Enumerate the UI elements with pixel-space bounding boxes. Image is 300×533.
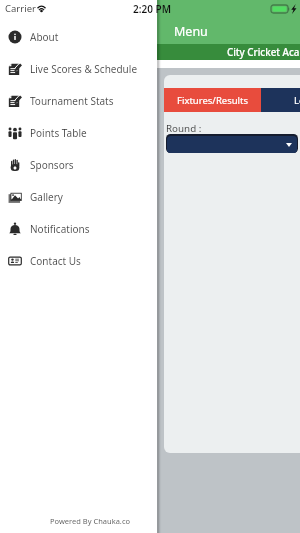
staticText: Contact Us xyxy=(30,254,81,268)
button[interactable]: Points Table xyxy=(0,117,157,149)
button[interactable]: Sponsors xyxy=(0,149,157,181)
staticText: Tournament Stats xyxy=(30,94,114,108)
staticText: Live Scores & Schedule xyxy=(30,62,138,76)
button[interactable]: Gallery xyxy=(0,181,157,213)
staticText: Round : xyxy=(166,122,202,135)
button[interactable]: Notifications xyxy=(0,213,157,245)
staticText: Gallery xyxy=(30,190,63,204)
other: Battery charging xyxy=(271,4,296,14)
staticText: City Cricket Academy xyxy=(227,46,300,59)
staticText: Notifications xyxy=(30,222,90,236)
button[interactable]: Live Scores & Schedule xyxy=(0,53,157,85)
staticText: Menu xyxy=(174,23,208,40)
button[interactable]: Tournament Stats xyxy=(0,85,157,117)
button[interactable]: About xyxy=(0,21,157,53)
button[interactable] xyxy=(167,136,297,153)
staticText: Fixtures/Results xyxy=(177,94,249,107)
button[interactable]: Leaderboard xyxy=(261,88,300,112)
button[interactable]: Fixtures/Results xyxy=(164,88,261,112)
staticText: About xyxy=(30,30,59,44)
staticText: Carrier xyxy=(5,2,36,15)
staticText: Sponsors xyxy=(30,158,74,172)
staticText: Leaderboard xyxy=(294,94,300,107)
button[interactable]: Contact Us xyxy=(0,245,157,277)
staticText: Points Table xyxy=(30,126,87,140)
staticText: 2:20 PM xyxy=(133,2,171,16)
staticText: Powered By Chauka.co xyxy=(50,516,131,526)
